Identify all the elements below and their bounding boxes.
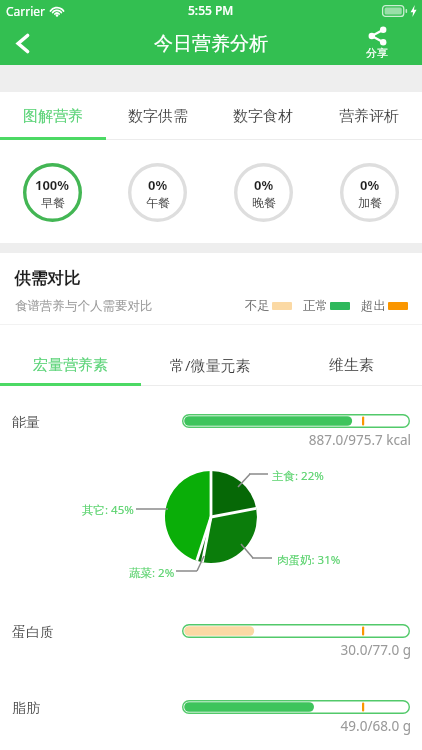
button[interactable]: 维生素	[281, 344, 422, 386]
button[interactable]: 数字供需	[105, 92, 210, 140]
button[interactable]: 100%	[0, 140, 105, 243]
button[interactable]: Back	[0, 22, 45, 65]
staticText: 供需对比	[14, 268, 80, 289]
staticText: 食谱营养与个人需要对比	[15, 298, 153, 314]
staticText: 超出	[361, 298, 386, 314]
staticText: 蛋白质	[12, 624, 54, 638]
staticText: 100%	[35, 176, 70, 194]
staticText: 不足	[245, 298, 270, 314]
staticText: 今日营养分析	[154, 32, 268, 56]
staticText: 30.0/77.0 g	[0, 641, 411, 659]
staticText: 分享	[366, 46, 388, 60]
staticText: 午餐	[146, 195, 170, 210]
staticText: 营养评析	[339, 107, 399, 126]
staticText: 晚餐	[252, 195, 276, 210]
button[interactable]: 0%	[210, 140, 316, 243]
staticText: 早餐	[41, 195, 65, 210]
staticText: 887.0/975.7 kcal	[0, 431, 411, 449]
staticText: 0%	[360, 176, 380, 194]
staticText: 维生素	[329, 356, 374, 375]
staticText: 能量	[12, 414, 40, 428]
button[interactable]: 图解营养	[0, 92, 105, 140]
staticText: 5:55 PM	[188, 2, 234, 18]
button[interactable]: 数字食材	[210, 92, 316, 140]
staticText: 数字供需	[128, 107, 188, 126]
button[interactable]: 分享	[348, 22, 406, 65]
staticText: 49.0/68.0 g	[0, 717, 411, 735]
button[interactable]: 超出	[361, 298, 408, 314]
staticText: 脂肪	[12, 700, 40, 714]
button[interactable]: 0%	[105, 140, 210, 243]
staticText: 加餐	[358, 195, 382, 210]
staticText: 0%	[148, 176, 168, 194]
button[interactable]: 不足	[245, 298, 292, 314]
staticText: 常/微量元素	[170, 355, 251, 375]
staticText: 主食: 22%	[272, 468, 324, 484]
button[interactable]: 0%	[316, 140, 422, 243]
button[interactable]: 正常	[303, 298, 350, 314]
staticText: 数字食材	[233, 107, 293, 126]
button[interactable]: 常/微量元素	[140, 344, 281, 386]
staticText: 其它: 45%	[82, 502, 134, 518]
staticText: 蔬菜: 2%	[129, 565, 175, 581]
staticText: 宏量营养素	[33, 356, 108, 375]
staticText: 0%	[254, 176, 274, 194]
button[interactable]: 宏量营养素	[0, 344, 140, 386]
staticText: 正常	[303, 298, 328, 314]
staticText: 肉蛋奶: 31%	[277, 552, 341, 568]
button[interactable]: 营养评析	[316, 92, 422, 140]
staticText: Carrier	[6, 3, 46, 19]
staticText: 图解营养	[23, 107, 83, 126]
